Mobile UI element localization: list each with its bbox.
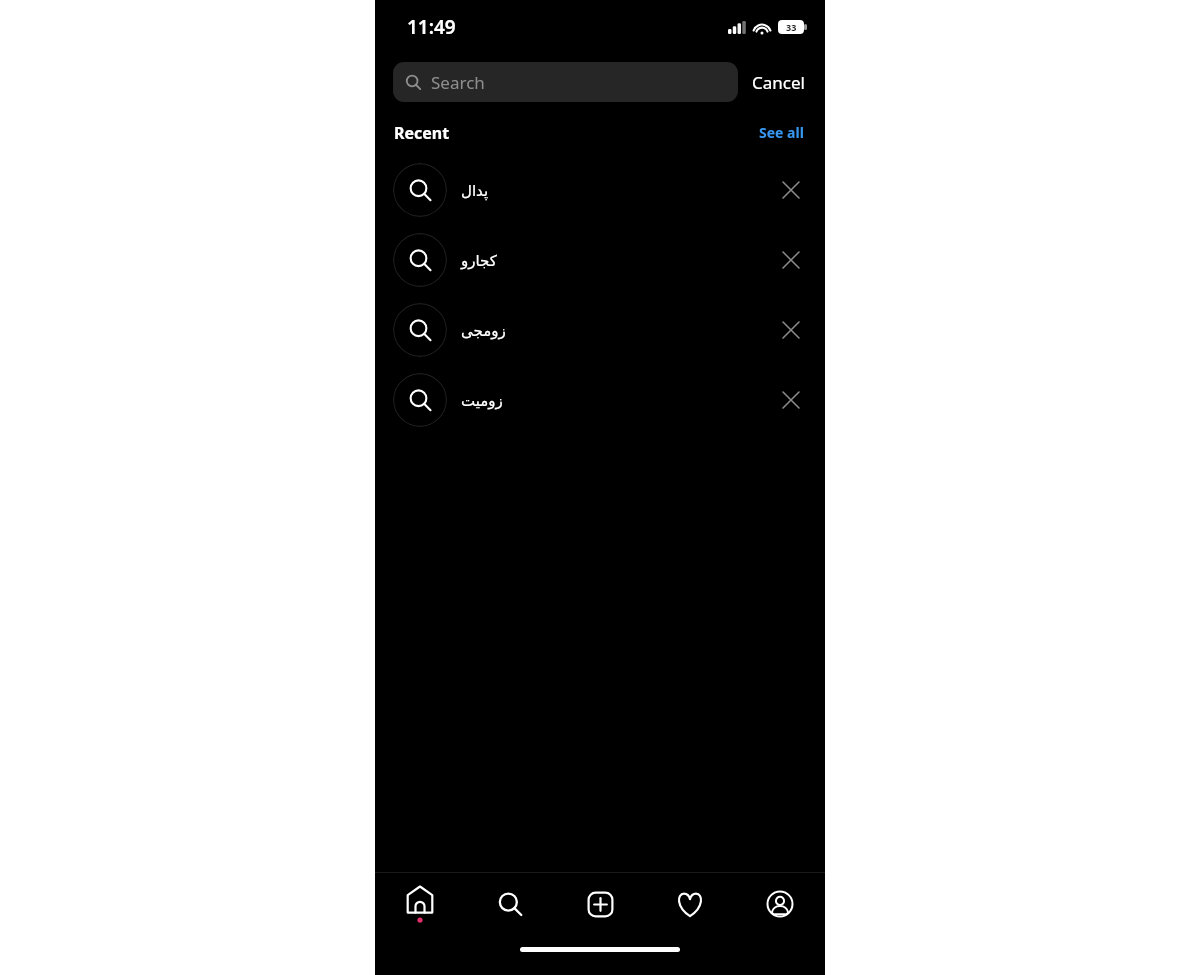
staticText: Search [431,71,485,94]
staticText: 11:49 [407,14,456,40]
button[interactable]: زومجی [375,295,825,365]
staticText: کجارو [461,252,771,269]
button[interactable]: زومیت [375,365,825,435]
staticText: زومجی [461,322,771,339]
button[interactable]: Activity [645,873,735,935]
button[interactable]: Search [465,873,555,935]
button[interactable]: Remove زومیت from recent searches [771,380,811,420]
staticText: Cancel [752,71,805,94]
button[interactable]: Remove زومجی from recent searches [771,310,811,350]
button[interactable]: Profile [735,873,825,935]
button[interactable]: Remove کجارو from recent searches [771,240,811,280]
staticText: Recent [394,122,450,144]
button[interactable]: کجارو [375,225,825,295]
button[interactable]: Cancel [738,65,807,100]
button[interactable]: Remove پدال from recent searches [771,170,811,210]
button[interactable]: پدال [375,155,825,225]
button[interactable]: Search [393,62,738,102]
staticText: 33 [786,21,797,33]
staticText: See all [759,123,804,142]
button[interactable]: Create new post [555,873,645,935]
button[interactable]: See all [757,118,806,147]
staticText: پدال [461,182,771,199]
staticText: زومیت [461,392,771,409]
button[interactable]: Home [375,873,465,935]
